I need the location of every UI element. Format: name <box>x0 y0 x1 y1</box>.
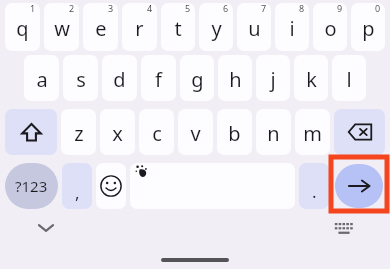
button[interactable]: o <box>313 3 347 51</box>
button[interactable]: c <box>139 109 174 155</box>
staticText: p <box>362 15 375 42</box>
staticText: v <box>190 120 201 147</box>
staticText: 5 <box>185 3 191 14</box>
button[interactable]: j <box>256 55 290 101</box>
button[interactable]: d <box>102 55 137 101</box>
button[interactable]: r <box>122 3 157 51</box>
staticText: 8 <box>299 3 305 14</box>
button[interactable]: l <box>332 55 366 101</box>
staticText: o <box>324 15 337 42</box>
staticText: 4 <box>147 3 153 14</box>
button[interactable]: n <box>256 109 291 155</box>
button[interactable]: m <box>295 109 330 155</box>
button[interactable]: , <box>62 163 92 209</box>
button[interactable]: a <box>24 55 59 101</box>
staticText: 3 <box>108 3 114 14</box>
button[interactable]: Shift <box>5 109 57 155</box>
staticText: 6 <box>223 3 229 14</box>
staticText: 7 <box>261 3 267 14</box>
button[interactable]: i <box>275 3 309 51</box>
staticText: l <box>346 66 352 93</box>
staticText: 1 <box>30 3 36 14</box>
button[interactable]: k <box>294 55 328 101</box>
button[interactable]: Space <box>130 163 295 209</box>
button[interactable]: e <box>83 3 118 51</box>
button[interactable]: x <box>100 109 135 155</box>
staticText: r <box>135 15 144 42</box>
button[interactable]: Emoji <box>96 163 126 209</box>
staticText: s <box>76 66 86 93</box>
staticText: j <box>270 66 276 93</box>
staticText: , <box>75 181 80 204</box>
staticText: y <box>211 15 222 42</box>
button[interactable]: p <box>351 3 385 51</box>
staticText: z <box>74 120 84 147</box>
staticText: i <box>289 15 295 42</box>
staticText: t <box>174 15 182 42</box>
button[interactable]: Backspace <box>334 109 385 155</box>
button[interactable]: z <box>61 109 96 155</box>
button[interactable]: u <box>237 3 271 51</box>
staticText: g <box>191 66 204 93</box>
button[interactable]: . <box>299 163 329 209</box>
button[interactable]: w <box>44 3 79 51</box>
staticText: x <box>112 120 123 147</box>
button[interactable]: q <box>5 3 40 51</box>
button[interactable]: Hide keyboard <box>33 215 59 241</box>
button[interactable]: b <box>217 109 252 155</box>
button[interactable]: f <box>141 55 176 101</box>
button[interactable]: g <box>180 55 214 101</box>
staticText: c <box>152 120 162 147</box>
button[interactable]: Switch keyboard <box>331 215 357 241</box>
staticText: d <box>113 66 126 93</box>
staticText: . <box>312 180 317 203</box>
staticText: u <box>248 15 261 42</box>
button[interactable]: t <box>161 3 195 51</box>
staticText: 2 <box>69 3 75 14</box>
staticText: b <box>228 120 241 147</box>
button[interactable]: s <box>63 55 98 101</box>
staticText: f <box>155 66 162 93</box>
staticText: k <box>306 66 317 93</box>
staticText: h <box>229 66 242 93</box>
button[interactable]: y <box>199 3 233 51</box>
button[interactable]: ?123 <box>5 163 58 209</box>
staticText: 9 <box>337 3 343 14</box>
staticText: w <box>54 15 70 42</box>
button[interactable]: h <box>218 55 252 101</box>
staticText: n <box>267 120 280 147</box>
button[interactable]: Enter <box>335 164 383 208</box>
staticText: 0 <box>375 3 381 14</box>
staticText: m <box>303 120 322 147</box>
staticText: e <box>95 15 107 42</box>
staticText: q <box>16 15 29 42</box>
staticText: a <box>36 66 48 93</box>
button[interactable]: v <box>178 109 213 155</box>
staticText: ?123 <box>15 176 48 196</box>
